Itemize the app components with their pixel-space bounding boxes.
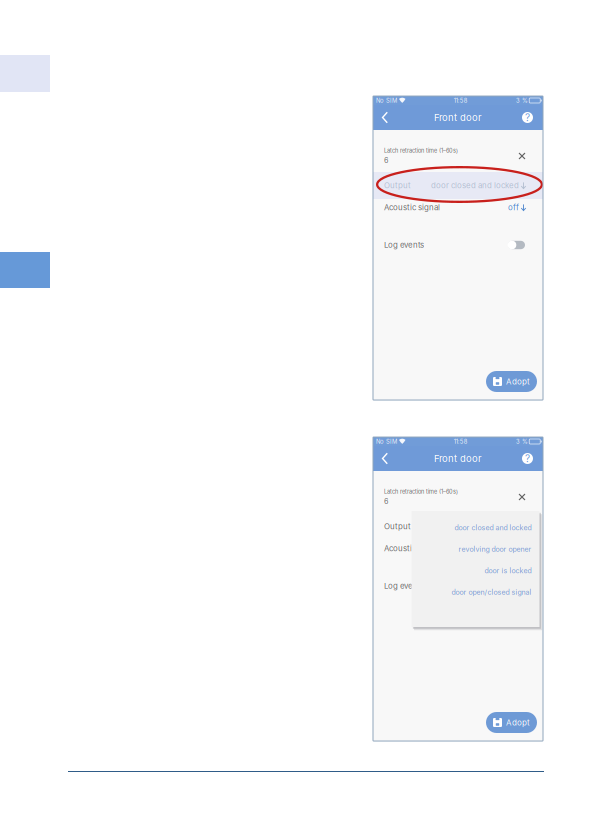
staticText: No SIM	[376, 438, 397, 445]
button[interactable]: Acoustic signal	[373, 540, 543, 557]
staticText: Adopt	[506, 377, 530, 386]
staticText: No SIM	[376, 97, 397, 104]
button[interactable]: door closed and locked	[411, 517, 539, 538]
staticText: door is locked	[484, 566, 531, 575]
button[interactable]: Back	[376, 106, 394, 129]
staticText: Latch retraction time (1–60s)	[384, 147, 458, 154]
button[interactable]: Output	[373, 172, 543, 199]
staticText: door closed and locked	[431, 181, 519, 190]
staticText: Log events	[384, 240, 424, 250]
button[interactable]: revolving door opener	[411, 538, 539, 560]
staticText: 11:58	[454, 97, 468, 104]
staticText: ?	[525, 452, 530, 465]
staticText: 3 %	[516, 438, 528, 445]
staticText: ?	[525, 111, 530, 124]
staticText: Acoustic signal	[384, 544, 440, 553]
staticText: door closed and locked	[431, 522, 519, 531]
button[interactable]: Back	[376, 447, 394, 470]
staticText: revolving door opener	[458, 545, 531, 553]
button[interactable]: Adopt	[486, 371, 537, 392]
button[interactable]: Help	[516, 447, 539, 470]
button[interactable]: Adopt	[486, 712, 537, 733]
staticText: off	[508, 544, 519, 553]
staticText: Adopt	[506, 718, 530, 727]
staticText: off	[508, 203, 519, 212]
staticText: 11:58	[454, 438, 468, 445]
button[interactable]: Clear	[512, 146, 532, 166]
staticText: Front door	[434, 453, 482, 464]
button[interactable]: Output	[373, 513, 543, 540]
staticText: Output	[384, 522, 411, 531]
button[interactable]: door is locked	[411, 560, 539, 581]
staticText: door closed and locked	[454, 523, 531, 532]
staticText: Output	[384, 181, 411, 190]
staticText: 6	[384, 497, 388, 506]
staticText: Log events	[384, 581, 424, 591]
staticText: Latch retraction time (1–60s)	[384, 488, 458, 495]
button[interactable]: Clear	[512, 487, 532, 507]
button[interactable]: Log events	[373, 575, 543, 597]
staticText: 3 %	[516, 97, 528, 104]
button[interactable]: door open/closed signal	[411, 581, 539, 603]
staticText: Front door	[434, 112, 482, 123]
staticText: 6	[384, 156, 388, 165]
staticText: Acoustic signal	[384, 203, 440, 212]
button[interactable]: Acoustic signal	[373, 199, 543, 216]
button[interactable]: Help	[516, 106, 539, 129]
staticText: door open/closed signal	[451, 588, 531, 596]
button[interactable]: Log events	[373, 234, 543, 256]
